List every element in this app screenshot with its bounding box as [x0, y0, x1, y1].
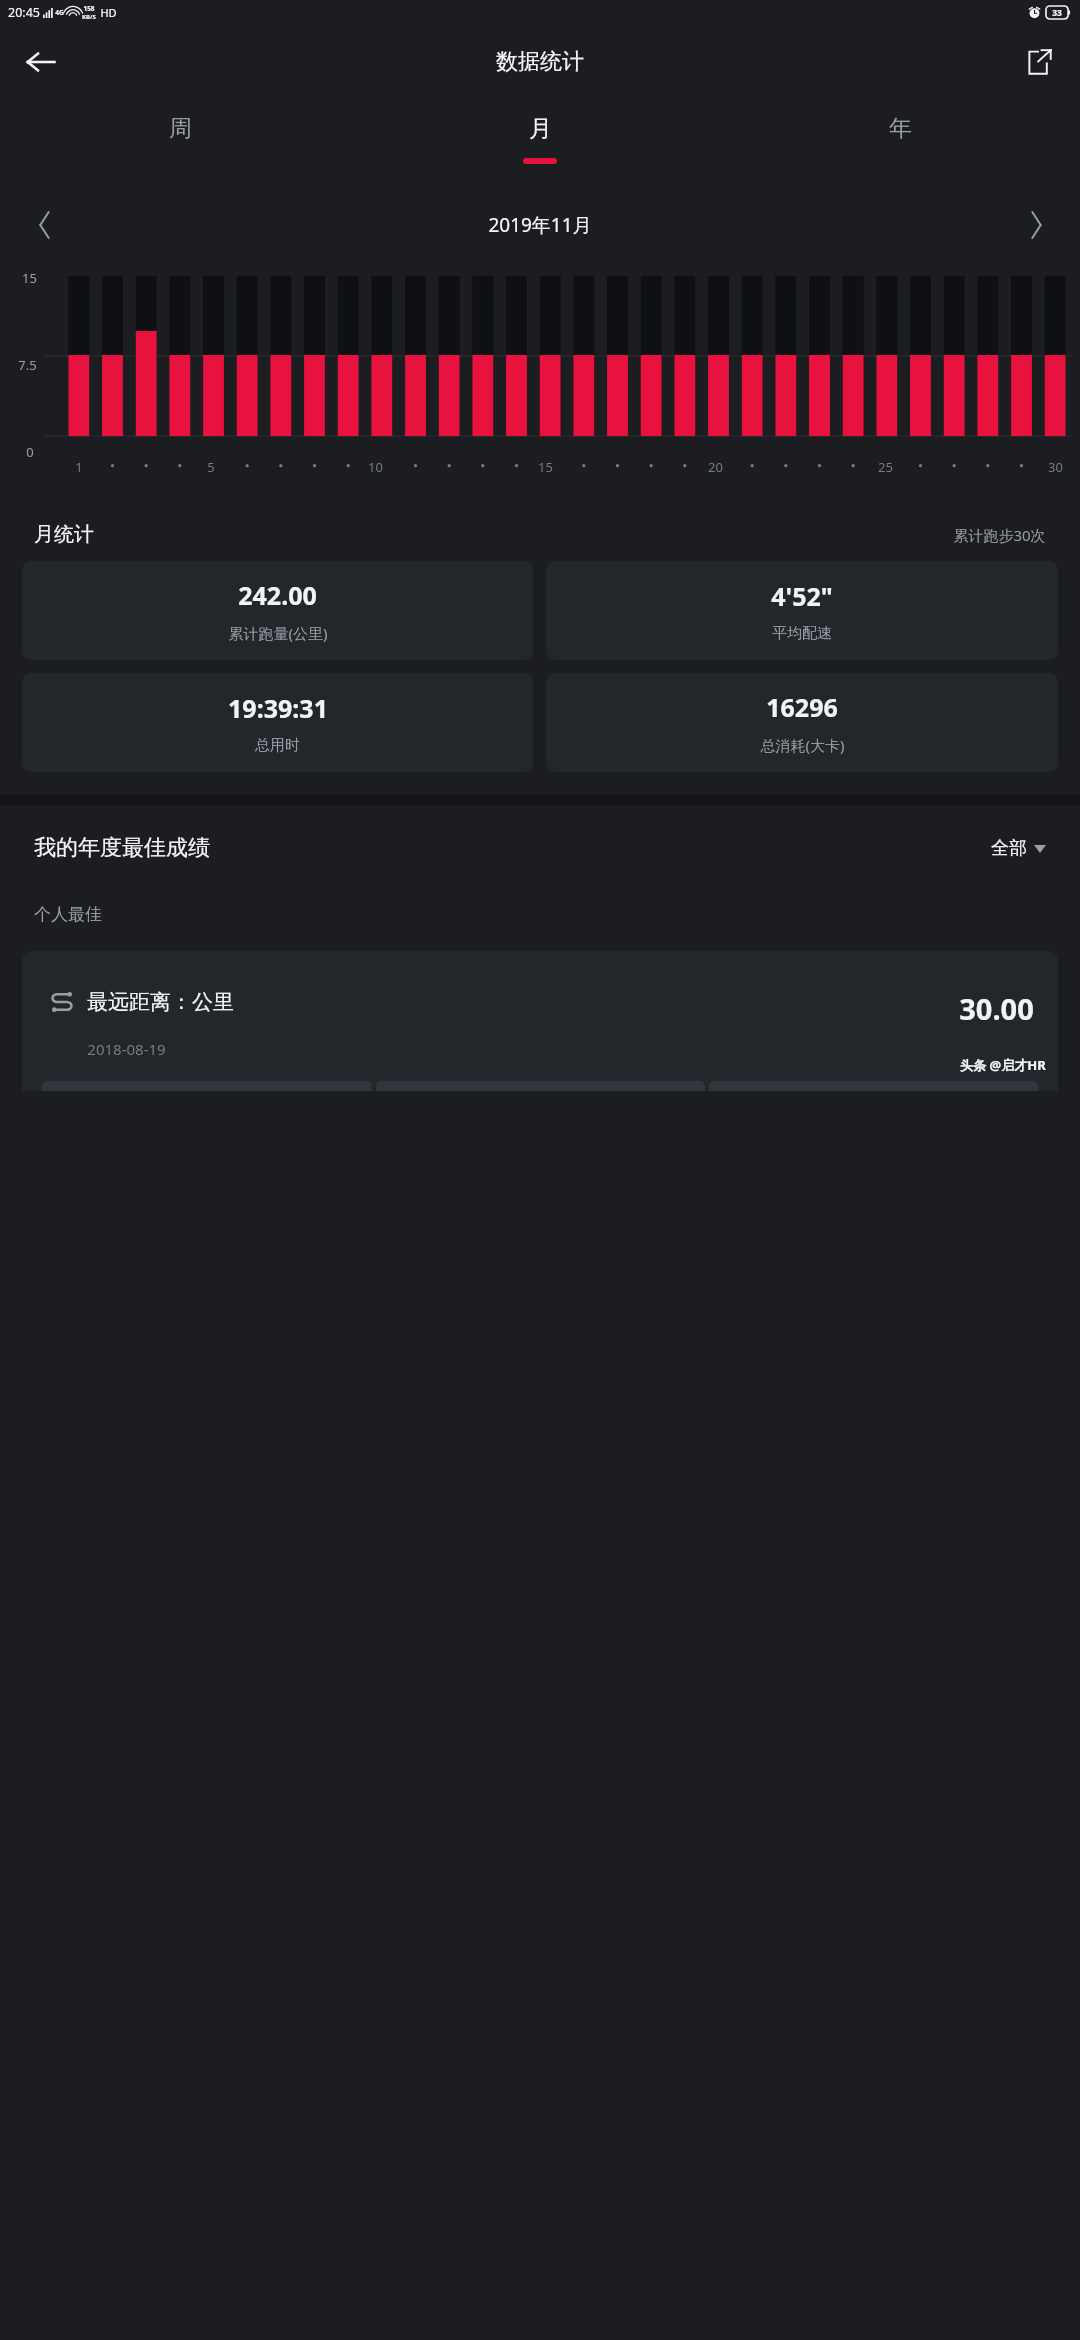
staticText: 1: [75, 458, 83, 476]
staticText: 16296: [766, 690, 838, 724]
staticText: 数据统计: [496, 48, 584, 76]
staticText: 总用时: [255, 736, 300, 755]
staticText: 最远距离：公里: [87, 989, 234, 1015]
staticText: 月: [529, 114, 552, 143]
staticText: 158: [83, 4, 95, 13]
staticText: KB/S: [82, 13, 96, 21]
staticText: 7.5: [18, 356, 37, 374]
button[interactable]: 最远距离：公里: [22, 951, 1058, 1091]
staticText: 全部: [991, 837, 1027, 860]
staticText: 4G: [55, 8, 64, 17]
staticText: 15: [538, 458, 553, 476]
staticText: 25: [878, 458, 893, 476]
staticText: 5: [207, 458, 215, 476]
staticText: 30.00: [959, 989, 1034, 1028]
button[interactable]: Previous month: [20, 201, 68, 249]
staticText: 累计跑步30次: [953, 525, 1046, 545]
staticText: 20: [708, 458, 723, 476]
button[interactable]: 4'52": [546, 561, 1058, 660]
button[interactable]: 年: [720, 100, 1080, 188]
staticText: 4'52": [771, 579, 833, 613]
staticText: 33: [1052, 7, 1062, 19]
button[interactable]: 全部: [991, 837, 1046, 860]
staticText: 10: [368, 458, 383, 476]
button[interactable]: 周: [0, 100, 360, 188]
staticText: 0: [26, 443, 34, 461]
staticText: 累计跑量(公里): [228, 623, 328, 643]
staticText: 个人最佳: [34, 904, 102, 925]
button[interactable]: Back: [14, 35, 68, 89]
staticText: 15: [22, 269, 37, 287]
staticText: 年: [889, 114, 912, 143]
button[interactable]: 16296: [546, 673, 1058, 772]
staticText: 30: [1048, 458, 1063, 476]
staticText: 我的年度最佳成绩: [34, 834, 210, 862]
staticText: 242.00: [238, 578, 317, 612]
button[interactable]: 月: [360, 100, 720, 188]
staticText: 平均配速: [772, 624, 832, 643]
staticText: 月统计: [34, 522, 94, 547]
staticText: 头条 @启才HR: [960, 1056, 1046, 1074]
staticText: 20:45: [8, 4, 40, 21]
staticText: 2018-08-19: [87, 1039, 166, 1059]
staticText: HD: [100, 5, 117, 20]
button[interactable]: Next month: [1012, 201, 1060, 249]
staticText: 2019年11月: [488, 212, 592, 238]
button[interactable]: 19:39:31: [22, 673, 533, 772]
staticText: 周: [169, 114, 192, 143]
button[interactable]: Share: [1012, 35, 1066, 89]
staticText: 19:39:31: [228, 691, 328, 725]
staticText: 总消耗(大卡): [760, 735, 845, 755]
button[interactable]: 242.00: [22, 561, 533, 660]
